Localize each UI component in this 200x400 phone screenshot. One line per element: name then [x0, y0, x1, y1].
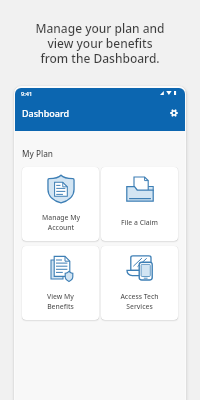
- staticText: Dashboard: [22, 107, 70, 119]
- button[interactable]: View My Benefits: [22, 246, 99, 320]
- staticText: File a Claim: [121, 218, 158, 227]
- button[interactable]: Access Tech Services: [101, 246, 178, 320]
- button[interactable]: Manage My Account: [22, 167, 99, 241]
- button[interactable]: File a Claim: [101, 167, 178, 241]
- staticText: 9:41: [21, 90, 33, 98]
- staticText: View My Benefits: [47, 292, 74, 311]
- button[interactable]: Settings: [167, 106, 180, 119]
- staticText: Manage My Account: [42, 213, 80, 232]
- staticText: My Plan: [22, 148, 53, 159]
- staticText: Access Tech Services: [120, 292, 159, 311]
- staticText: Manage your plan and view your benefits …: [35, 20, 165, 67]
